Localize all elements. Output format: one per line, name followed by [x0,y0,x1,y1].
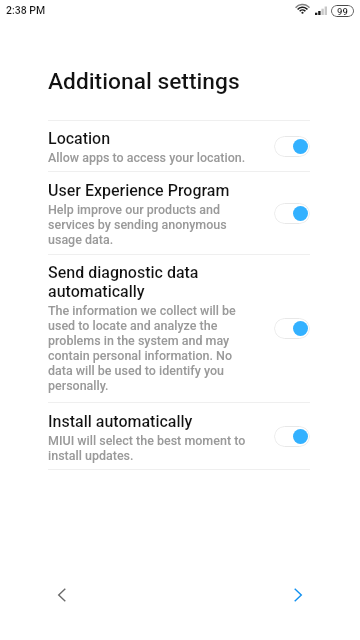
staticText: Allow apps to access your location. [48,150,246,165]
staticText: Location [48,129,111,148]
button[interactable]: Toggle [274,318,310,339]
button[interactable]: Toggle [274,426,310,447]
staticText: Additional settings [48,68,240,95]
staticText: 2:38 PM [6,4,46,16]
button[interactable]: User Experience Program [0,172,360,254]
button[interactable]: Install automatically [0,403,360,469]
button[interactable]: Next [278,575,318,615]
staticText: User Experience Program [48,181,230,200]
button[interactable]: Send diagnostic data automatically [0,255,360,402]
button[interactable]: Location [0,121,360,171]
button[interactable]: Toggle [274,136,310,157]
button[interactable]: Back [42,575,82,615]
staticText: 99 [337,6,348,17]
staticText: Send diagnostic data automatically [48,263,255,301]
staticText: Help improve our products and services b… [48,202,255,247]
staticText: The information we collect will be used … [48,303,255,393]
staticText: MIUI will select the best moment to inst… [48,433,255,463]
button[interactable]: Toggle [274,203,310,224]
staticText: Install automatically [48,412,193,431]
